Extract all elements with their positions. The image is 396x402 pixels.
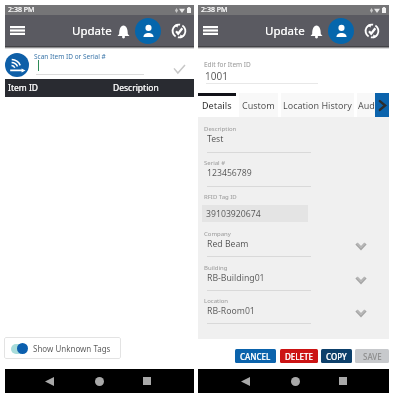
button[interactable]: CANCEL	[235, 349, 276, 363]
button[interactable]: Account	[135, 18, 161, 44]
button[interactable]: SAVE	[355, 349, 389, 363]
button[interactable]: Show Unknown Tags	[4, 337, 121, 359]
button[interactable]: Sync	[168, 20, 190, 42]
button[interactable]: Choose Location	[349, 301, 373, 325]
button[interactable]: Location History	[281, 93, 354, 117]
staticText: CANCEL	[240, 351, 271, 362]
staticText: SAVE	[363, 351, 382, 362]
staticText: DELETE	[285, 351, 313, 362]
button[interactable]: COPY	[321, 349, 352, 363]
button[interactable]: Choose Building	[349, 268, 373, 292]
staticText: RB-Room01	[207, 305, 255, 317]
button[interactable]: More tabs	[375, 93, 389, 117]
button[interactable]: Custom	[239, 93, 278, 117]
staticText: 123456789	[207, 167, 252, 179]
staticText: Description	[113, 82, 159, 94]
button[interactable]: Choose Company	[349, 234, 373, 258]
staticText: RB-Building01	[207, 272, 265, 284]
button[interactable]: Menu	[5, 15, 29, 46]
staticText: Building	[204, 264, 228, 272]
button[interactable]: Home	[87, 369, 111, 393]
staticText: Details	[202, 99, 232, 111]
button[interactable]: Recents	[135, 369, 159, 393]
button[interactable]: Back	[233, 369, 257, 393]
staticText: Item ID	[8, 82, 38, 94]
button[interactable]: Account	[328, 18, 354, 44]
staticText: 39103920674	[206, 208, 261, 220]
button[interactable]: Menu	[198, 15, 222, 46]
staticText: COPY	[326, 351, 347, 362]
staticText: Location History	[283, 99, 352, 111]
button[interactable]: Item ID	[5, 79, 194, 97]
staticText: 1001	[205, 69, 228, 83]
staticText: 2:38 PM	[8, 5, 35, 15]
staticText: Aud	[358, 99, 375, 111]
staticText: Red Beam	[207, 238, 249, 250]
staticText: Serial #	[204, 159, 226, 167]
staticText: Location	[204, 297, 229, 305]
button[interactable]: Notifications	[305, 20, 327, 42]
button[interactable]: Accept scan	[168, 58, 190, 80]
button[interactable]: Sync	[361, 20, 383, 42]
button[interactable]: Notifications	[112, 20, 134, 42]
button[interactable]: Aud	[357, 93, 375, 117]
staticText: Update	[265, 23, 305, 39]
staticText: 2:38 PM	[201, 5, 228, 15]
staticText: Description	[204, 125, 237, 133]
button[interactable]: Details	[198, 93, 236, 117]
staticText: Update	[72, 23, 112, 39]
staticText: Custom	[242, 99, 275, 111]
staticText: Edit for Item ID	[204, 60, 251, 69]
staticText: Test	[207, 133, 224, 145]
staticText: Company	[204, 230, 231, 238]
button[interactable]: Scan RFID tag	[5, 53, 29, 77]
button[interactable]: DELETE	[280, 349, 318, 363]
staticText: Show Unknown Tags	[33, 343, 111, 354]
button[interactable]: Back	[37, 369, 61, 393]
button[interactable]: Recents	[331, 369, 355, 393]
button[interactable]: Home	[283, 369, 307, 393]
staticText: Scan Item ID or Serial #	[34, 52, 106, 61]
staticText: RFID Tag ID	[204, 193, 237, 201]
